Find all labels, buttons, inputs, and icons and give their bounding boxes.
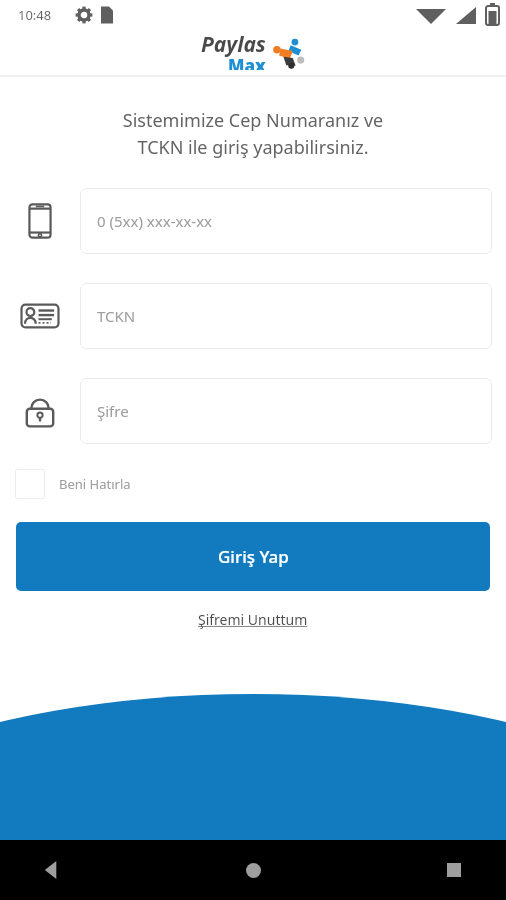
button[interactable]: Home [225, 842, 281, 898]
button[interactable]: Şifremi Unuttum [192, 607, 314, 632]
staticText: Max [228, 54, 266, 70]
staticText: Şifre [97, 401, 129, 421]
button[interactable]: Beni Hatırla [15, 469, 131, 499]
staticText: 0 (5xx) xxx-xx-xx [97, 211, 213, 231]
staticText: Sistemimize Cep Numaranız ve TCKN ile gi… [0, 108, 506, 159]
staticText: Paylas [201, 30, 266, 59]
button[interactable]: Password [80, 378, 492, 444]
staticText: Şifremi Unuttum [198, 610, 308, 629]
staticText: 10:48 [18, 6, 52, 24]
staticText: Giriş Yap [218, 545, 289, 568]
button[interactable]: Giriş Yap [16, 522, 490, 591]
button[interactable]: Recent apps [426, 842, 482, 898]
button[interactable]: Back [24, 842, 80, 898]
button[interactable]: Phone number [80, 188, 492, 254]
staticText: Beni Hatırla [59, 475, 131, 493]
staticText: TCKN [97, 306, 136, 326]
button[interactable]: National ID [80, 283, 492, 349]
